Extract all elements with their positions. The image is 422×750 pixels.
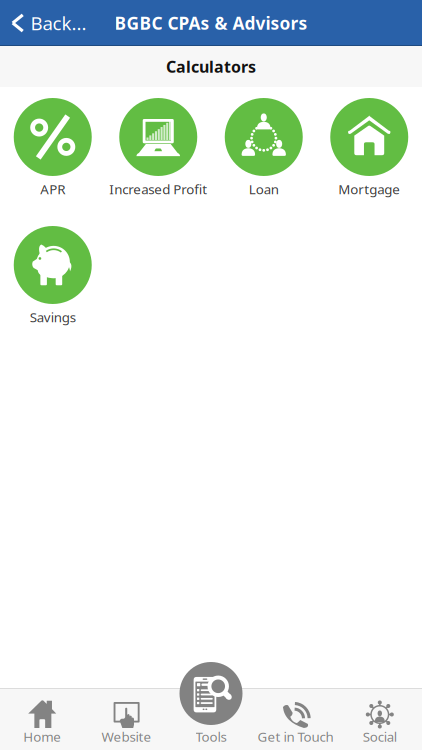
button[interactable]: Loan [211, 98, 316, 196]
button[interactable]: Tools [169, 689, 253, 750]
staticText: Calculators [166, 56, 256, 77]
button[interactable]: Tools [179, 662, 242, 725]
staticText: BGBC CPAs & Advisors [114, 11, 307, 34]
staticText: APR [40, 180, 65, 198]
button[interactable]: Home [0, 689, 84, 750]
button[interactable]: Social [338, 689, 422, 750]
staticText: Website [102, 728, 152, 745]
staticText: Social [363, 728, 397, 745]
staticText: Loan [249, 180, 279, 198]
button[interactable]: Back... [0, 0, 104, 46]
button[interactable]: Get in Touch [253, 689, 338, 750]
button[interactable]: APR [0, 98, 105, 196]
button[interactable]: Increased Profit [105, 98, 211, 196]
staticText: Tools [195, 728, 226, 745]
staticText: Get in Touch [257, 728, 333, 745]
staticText: Home [23, 728, 61, 745]
button[interactable]: Mortgage [316, 98, 422, 196]
button[interactable]: Website [84, 689, 169, 750]
staticText: Back... [30, 11, 86, 35]
staticText: Increased Profit [109, 180, 207, 198]
staticText: Savings [30, 308, 76, 326]
button[interactable]: Savings [0, 226, 105, 324]
staticText: Mortgage [338, 180, 400, 198]
